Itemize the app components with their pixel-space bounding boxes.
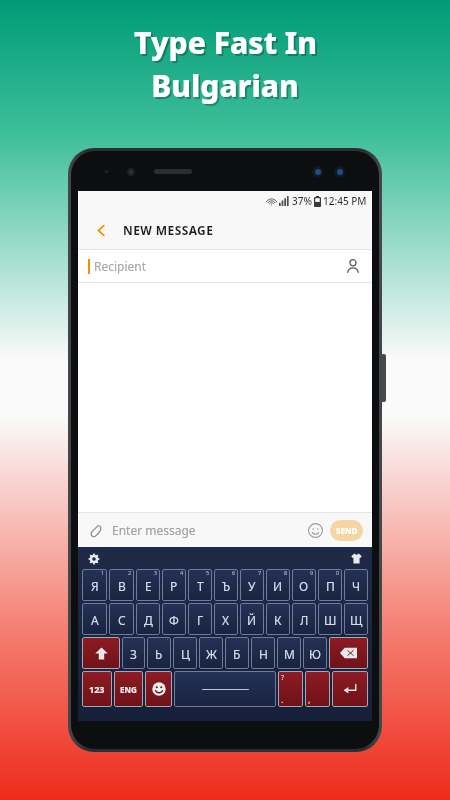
button[interactable]: , [305,671,330,707]
staticText: 123 [89,683,105,695]
staticText: З [130,646,137,662]
staticText: NEW MESSAGE [123,222,214,238]
staticText: С [118,612,126,628]
button[interactable]: Keyboard settings [85,550,102,567]
button[interactable]: Б [225,637,249,669]
staticText: Ь [155,646,163,662]
staticText: , [308,693,311,705]
button[interactable]: ? [278,671,303,707]
button[interactable]: 123 [82,671,112,707]
button[interactable]: К [266,603,290,635]
staticText: 6 [232,569,236,576]
staticText: 37% [292,194,312,208]
button[interactable]: 3 [136,569,160,601]
staticText: 3 [154,569,158,576]
staticText: 12:45 PM [323,194,367,208]
staticText: Г [197,612,204,628]
button[interactable]: ˙ [147,637,171,669]
button[interactable]: Х [214,603,238,635]
button[interactable]: ENG [114,671,143,707]
staticText: Recipient [94,258,147,274]
button[interactable]: Back [90,219,112,241]
button[interactable]: Space [174,671,276,707]
button[interactable]: Recipient [78,250,372,282]
button[interactable]: Themes [348,550,365,567]
staticText: ENG [120,684,137,695]
button[interactable]: Ю [303,637,327,669]
button[interactable]: Й [240,603,264,635]
button[interactable]: 9 [292,569,316,601]
staticText: Т [197,578,204,594]
staticText: Ж [206,646,217,662]
button[interactable]: Back [78,211,372,249]
staticText: Ю [309,646,321,662]
button[interactable]: Add contact [344,257,362,275]
button[interactable]: Д [136,603,160,635]
staticText: 5 [206,569,210,576]
staticText: 2 [128,569,132,576]
staticText: А [91,612,99,628]
staticText: Ф [169,612,179,628]
button[interactable]: Ц [173,637,197,669]
button[interactable]: Щ [344,603,368,635]
staticText: ? [281,673,285,683]
staticText: Н [259,646,268,662]
button[interactable]: 2 [109,569,134,601]
button[interactable]: 4 [162,569,186,601]
staticText: К [274,612,282,628]
button[interactable]: 1 [82,569,107,601]
button[interactable]: Ч [344,569,368,601]
button[interactable]: Attach [87,521,105,539]
button[interactable]: 8 [266,569,290,601]
button[interactable]: З [122,637,145,669]
button[interactable]: Emoji [145,671,172,707]
staticText: Й [247,612,257,628]
button[interactable]: Emoji [305,520,325,540]
staticText: Д [144,612,153,628]
button[interactable]: Shift [82,637,120,669]
staticText: П [326,578,335,594]
staticText: Type Fast In [134,22,317,63]
staticText: Е [145,578,152,594]
button[interactable]: Attach [78,513,372,547]
button[interactable]: С [109,603,134,635]
staticText: 4 [180,569,184,576]
button[interactable]: Enter [332,671,368,707]
button[interactable]: Ф [162,603,186,635]
button[interactable]: Ш [318,603,342,635]
staticText: Л [300,612,309,628]
button[interactable]: 6 [214,569,238,601]
staticText: Bulgarian [151,65,299,106]
staticText: ˙ [167,637,169,644]
staticText: Я [91,578,99,594]
staticText: Enter message [112,522,196,538]
button[interactable]: А [82,603,107,635]
staticText: Ш [324,612,337,628]
staticText: В [118,578,126,594]
button[interactable]: М [277,637,301,669]
staticText: Ч [352,578,361,594]
staticText: Р [170,578,178,594]
button[interactable]: 0 [318,569,342,601]
button[interactable]: Г [188,603,212,635]
button[interactable]: 5 [188,569,212,601]
button[interactable]: Л [292,603,316,635]
staticText: Ъ [222,578,231,594]
button[interactable]: Backspace [329,637,368,669]
staticText: Х [222,612,230,628]
staticText: Bulgarian [153,67,301,108]
staticText: 0 [336,569,340,576]
staticText: SEND [336,525,358,536]
button[interactable]: SEND [330,520,363,541]
staticText: 8 [284,569,288,576]
staticText: И [273,578,283,594]
staticText: Б [233,646,241,662]
staticText: Щ [350,612,363,628]
button[interactable]: 7 [240,569,264,601]
staticText: 9 [310,569,314,576]
button[interactable]: Ж [199,637,223,669]
staticText: 1 [101,569,105,576]
button[interactable]: Н [251,637,275,669]
staticText: Type Fast In [136,24,319,65]
staticText: 7 [258,569,262,576]
